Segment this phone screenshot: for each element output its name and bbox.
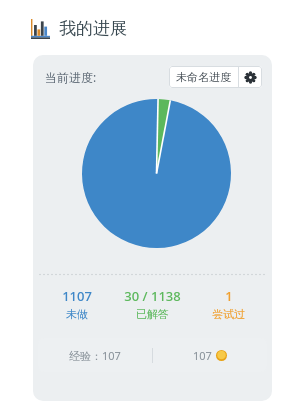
staticText: 我的进展 <box>59 18 127 39</box>
button[interactable]: 1 <box>193 287 264 321</box>
staticText: 1 <box>225 287 233 305</box>
button[interactable]: 未命名进度 <box>169 66 238 88</box>
button[interactable]: 设置 <box>239 66 262 88</box>
staticText: 未做 <box>66 307 88 321</box>
staticText: 经验：107 <box>69 348 121 363</box>
button[interactable]: 1107 <box>41 287 112 321</box>
staticText: 当前进度: <box>45 69 97 85</box>
staticText: 1107 <box>62 287 92 305</box>
staticText: 已解答 <box>136 307 169 321</box>
staticText: 未命名进度 <box>176 70 231 84</box>
staticText: 尝试过 <box>212 307 245 321</box>
button[interactable]: 经验：107 <box>38 338 267 372</box>
staticText: 107 <box>193 348 212 363</box>
button[interactable]: 30 / 1138 <box>112 287 193 321</box>
staticText: 30 / 1138 <box>124 287 181 305</box>
